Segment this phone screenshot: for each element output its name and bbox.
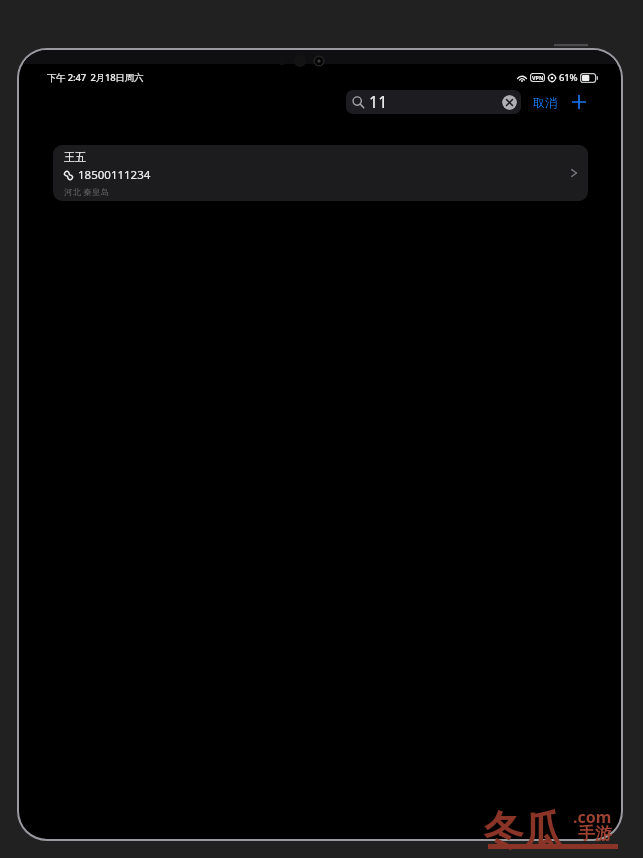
staticText: 11 bbox=[369, 91, 388, 113]
staticText: VPN bbox=[532, 74, 544, 81]
staticText: 王五 bbox=[64, 150, 86, 164]
button[interactable]: Add contact bbox=[568, 91, 590, 113]
button[interactable]: Clear search bbox=[502, 95, 517, 110]
staticText: 冬瓜 bbox=[484, 805, 562, 855]
staticText: 取消 bbox=[533, 95, 557, 110]
staticText: 河北 秦皇岛 bbox=[64, 186, 109, 198]
button[interactable]: 取消 bbox=[531, 92, 559, 112]
staticText: .com bbox=[573, 806, 612, 828]
staticText: 18500111234 bbox=[78, 167, 151, 183]
staticText: 手游 bbox=[578, 823, 612, 844]
button[interactable]: 王五 bbox=[53, 145, 588, 201]
staticText: 下午 2:47 2月18日周六 bbox=[47, 71, 144, 84]
staticText: 61% bbox=[559, 71, 578, 84]
button[interactable]: 11 bbox=[346, 90, 521, 114]
